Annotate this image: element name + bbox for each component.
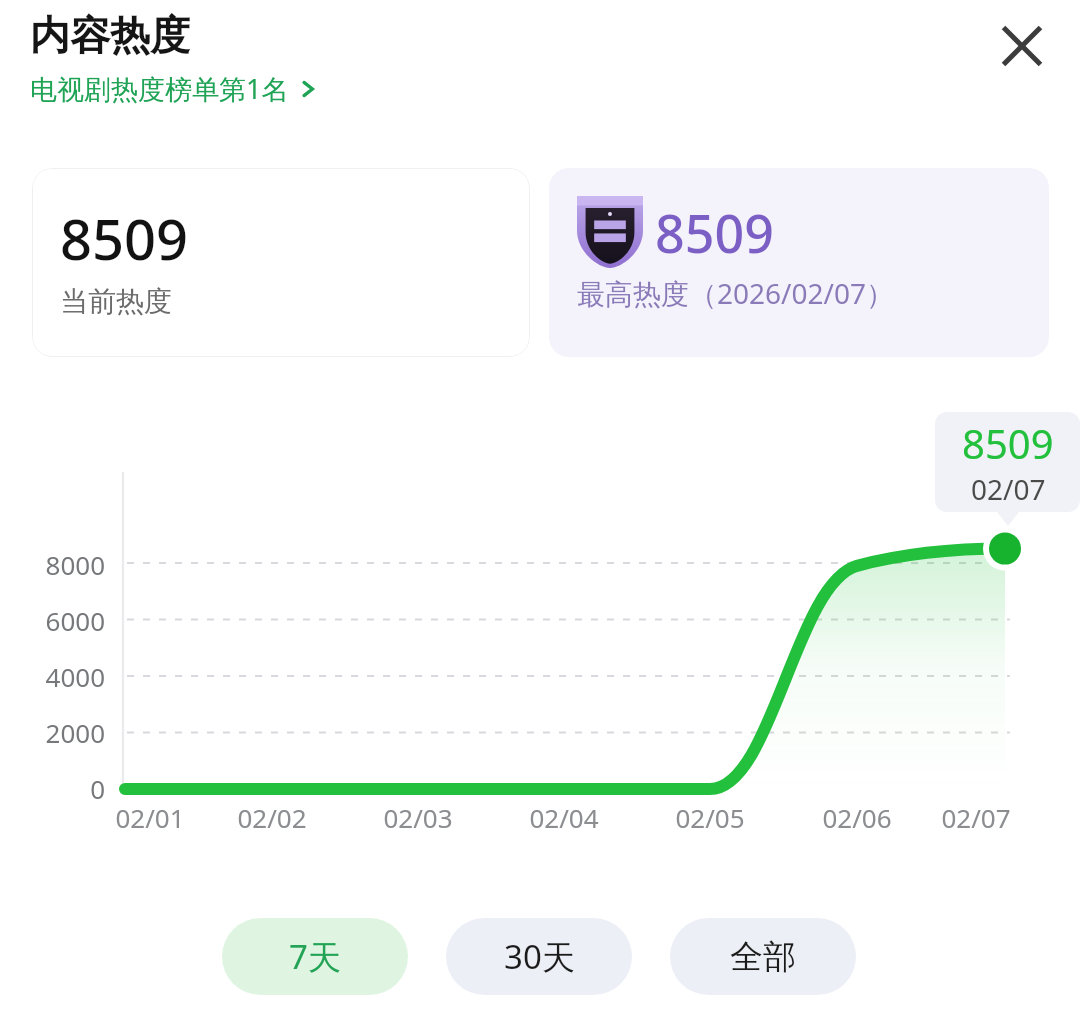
staticText: 8509 bbox=[655, 197, 774, 268]
staticText: 8000 bbox=[45, 547, 105, 582]
staticText: 7天 bbox=[289, 934, 341, 979]
staticText: 02/01 bbox=[115, 800, 185, 835]
staticText: 02/02 bbox=[237, 800, 307, 835]
staticText: 0 bbox=[90, 771, 105, 806]
button[interactable]: 电视剧热度榜单第1名 bbox=[30, 68, 327, 109]
button[interactable]: 30天 bbox=[446, 918, 632, 995]
staticText: 8509 bbox=[962, 416, 1054, 470]
staticText: 电视剧热度榜单第1名 bbox=[30, 70, 289, 107]
staticText: 最高热度（2026/02/07） bbox=[577, 274, 894, 312]
button[interactable]: 全部 bbox=[670, 918, 856, 995]
button[interactable]: 8509 bbox=[549, 168, 1049, 357]
staticText: 02/06 bbox=[822, 800, 892, 835]
staticText: 02/04 bbox=[529, 800, 599, 835]
staticText: 内容热度 bbox=[30, 10, 190, 60]
staticText: 6000 bbox=[45, 603, 105, 638]
staticText: 02/05 bbox=[675, 800, 745, 835]
staticText: 2000 bbox=[45, 715, 105, 750]
button[interactable]: Close bbox=[978, 2, 1066, 90]
staticText: 02/07 bbox=[971, 470, 1046, 508]
staticText: 02/03 bbox=[383, 800, 453, 835]
staticText: 当前热度 bbox=[60, 284, 172, 319]
button[interactable]: 7天 bbox=[222, 918, 408, 995]
button[interactable]: 8509 bbox=[32, 168, 530, 357]
staticText: 30天 bbox=[504, 934, 575, 979]
staticText: 02/07 bbox=[941, 800, 1011, 835]
staticText: 全部 bbox=[730, 936, 796, 978]
staticText: 4000 bbox=[45, 659, 105, 694]
staticText: 8509 bbox=[60, 200, 189, 276]
